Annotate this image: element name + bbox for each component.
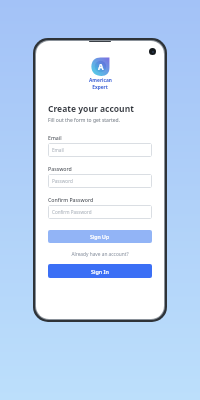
staticText: Confirm Password [52, 209, 92, 215]
staticText: Create your account [48, 103, 134, 115]
staticText: Confirm Password [48, 196, 94, 203]
staticText: Email [52, 147, 64, 153]
button[interactable]: Already have an account? [48, 251, 152, 258]
staticText: Sign In [91, 268, 109, 275]
staticText: American [89, 77, 112, 84]
staticText: A [98, 61, 104, 72]
button[interactable]: Sign Up [48, 230, 152, 243]
button[interactable]: Confirm Password [48, 205, 152, 219]
button[interactable]: Password [48, 174, 152, 188]
staticText: Password [48, 165, 72, 172]
staticText: Sign Up [90, 233, 110, 240]
staticText: Fill out the form to get started. [48, 117, 121, 124]
button[interactable]: Sign In [48, 264, 152, 278]
staticText: Password [52, 178, 73, 184]
staticText: Expert [92, 84, 108, 91]
staticText: Already have an account? [71, 251, 129, 258]
button[interactable]: Email [48, 143, 152, 157]
staticText: Email [48, 134, 62, 141]
